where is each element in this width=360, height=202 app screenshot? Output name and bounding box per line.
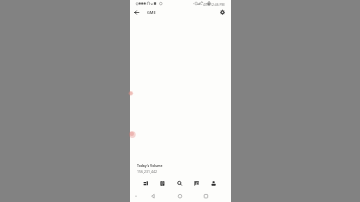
button[interactable]: Back: [131, 7, 143, 19]
button[interactable]: News: [156, 177, 169, 190]
staticText: GME: [147, 10, 156, 15]
staticText: 40%: [203, 2, 210, 6]
button[interactable]: Messages: [190, 177, 203, 190]
staticText: 156,231,442: [137, 169, 157, 174]
button[interactable]: Search: [173, 177, 186, 190]
button[interactable]: Settings: [217, 6, 229, 18]
staticText: Today's Volume: [137, 163, 163, 167]
staticText: 12:46 PM: [210, 2, 225, 7]
button[interactable]: Portfolio: [140, 177, 153, 190]
button[interactable]: Profile: [207, 177, 220, 190]
